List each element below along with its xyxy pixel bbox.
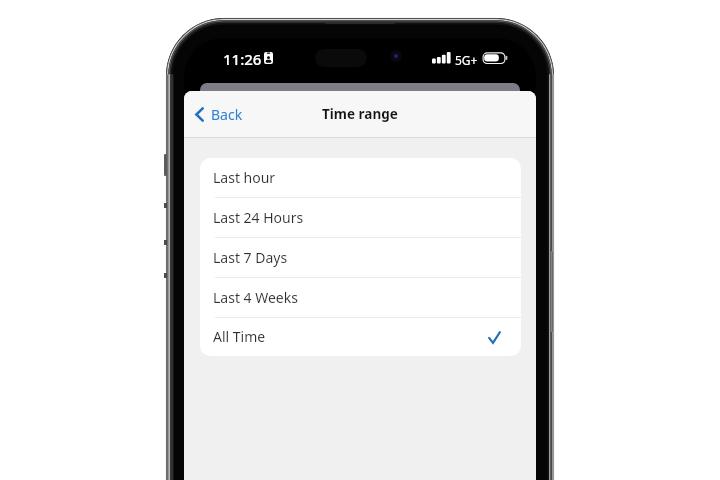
button[interactable]: All Time [200,318,521,356]
staticText: Last hour [213,168,276,187]
button[interactable]: Back [184,96,255,133]
button[interactable]: Last hour [200,158,521,198]
button[interactable]: Last 4 Weeks [200,278,521,318]
staticText: All Time [213,327,266,346]
staticText: Last 24 Hours [213,208,304,227]
staticText: Last 7 Days [213,248,288,267]
button[interactable]: Last 24 Hours [200,198,521,238]
staticText: Time range [322,105,398,123]
staticText: Back [211,105,243,124]
button[interactable]: Last 7 Days [200,238,521,278]
staticText: Last 4 Weeks [213,288,298,307]
staticText: 11:26 [223,49,262,69]
staticText: 5G+ [455,52,478,68]
